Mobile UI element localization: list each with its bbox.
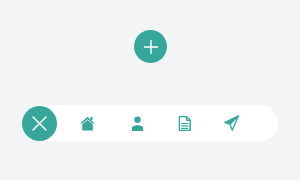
button[interactable]: Add	[134, 30, 167, 63]
button[interactable]: Home	[69, 105, 105, 141]
button[interactable]: Profile	[119, 105, 155, 141]
button[interactable]: Close	[22, 106, 57, 141]
button[interactable]: Send	[213, 105, 249, 141]
button[interactable]: Documents	[166, 105, 202, 141]
